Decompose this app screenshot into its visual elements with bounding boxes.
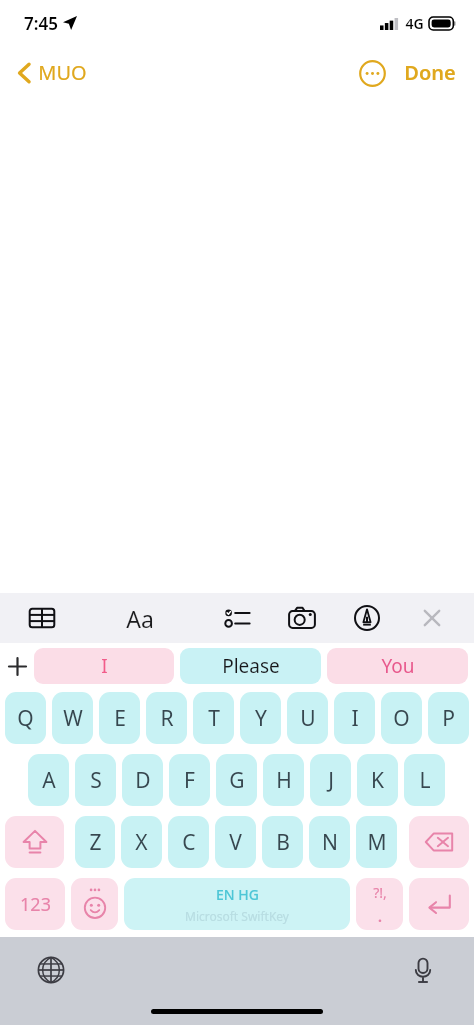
staticText: M	[367, 828, 387, 857]
staticText: W	[63, 704, 83, 733]
button[interactable]: I	[334, 692, 375, 744]
button[interactable]: D	[122, 754, 163, 806]
staticText: Aa	[126, 603, 154, 634]
button[interactable]: Text format	[74, 593, 139, 643]
button[interactable]: Aa	[75, 593, 205, 643]
staticText: A	[42, 766, 56, 795]
button[interactable]: A	[28, 754, 69, 806]
staticText: V	[229, 828, 242, 857]
button[interactable]: J	[310, 754, 351, 806]
staticText: I	[351, 704, 359, 733]
button[interactable]: Punctuation	[356, 878, 403, 930]
staticText: 4G	[405, 14, 424, 33]
button[interactable]: Close keyboard	[399, 593, 464, 643]
staticText: E	[114, 704, 126, 733]
button[interactable]: Backspace	[409, 816, 469, 868]
staticText: You	[381, 653, 415, 679]
button[interactable]: G	[216, 754, 257, 806]
staticText: K	[371, 766, 384, 795]
button[interactable]: R	[146, 692, 187, 744]
button[interactable]: C	[168, 816, 209, 868]
button[interactable]: Q	[5, 692, 46, 744]
button[interactable]: X	[121, 816, 162, 868]
button[interactable]: N	[309, 816, 350, 868]
staticText: C	[182, 828, 196, 857]
staticText: 7:45	[24, 12, 58, 35]
staticText: 123	[20, 892, 51, 917]
staticText: O	[393, 704, 410, 733]
button[interactable]: Shift	[5, 816, 64, 868]
staticText: EN HG	[216, 885, 259, 904]
staticText: .	[378, 907, 382, 926]
button[interactable]: O	[381, 692, 422, 744]
staticText: G	[229, 766, 245, 795]
staticText: F	[184, 766, 195, 795]
button[interactable]: Z	[75, 816, 115, 868]
button[interactable]: Y	[240, 692, 281, 744]
staticText: R	[160, 704, 174, 733]
staticText: Z	[89, 828, 102, 857]
button[interactable]: V	[215, 816, 256, 868]
staticText: Microsoft SwiftKey	[185, 908, 289, 924]
button[interactable]: Table	[10, 593, 74, 643]
button[interactable]: Return	[409, 878, 469, 930]
button[interactable]: You	[327, 648, 468, 684]
button[interactable]: H	[263, 754, 304, 806]
button[interactable]: Please	[180, 648, 321, 684]
button[interactable]: More options	[357, 58, 387, 88]
button[interactable]: S	[75, 754, 116, 806]
staticText: X	[135, 828, 148, 857]
button[interactable]: Camera	[269, 593, 334, 643]
staticText: Y	[255, 704, 267, 733]
button[interactable]: E	[99, 692, 140, 744]
staticText: Q	[17, 704, 34, 733]
button[interactable]: M	[356, 816, 397, 868]
button[interactable]: L	[404, 754, 445, 806]
staticText: J	[328, 766, 334, 795]
button[interactable]: W	[52, 692, 93, 744]
staticText: S	[90, 766, 102, 795]
staticText: L	[419, 766, 431, 795]
button[interactable]: I	[34, 648, 174, 684]
staticText: P	[442, 704, 455, 733]
button[interactable]: K	[357, 754, 398, 806]
staticText: D	[135, 766, 151, 795]
button[interactable]: Checklist	[204, 593, 269, 643]
button[interactable]: F	[169, 754, 210, 806]
button[interactable]: MUO	[10, 55, 95, 90]
staticText: MUO	[38, 59, 87, 86]
staticText: T	[208, 704, 220, 733]
staticText: Done	[404, 59, 456, 86]
button[interactable]: 123	[5, 878, 65, 930]
button[interactable]: U	[287, 692, 328, 744]
staticText: H	[276, 766, 292, 795]
button[interactable]: T	[193, 692, 234, 744]
staticText: B	[276, 828, 290, 857]
button[interactable]: Done	[400, 55, 460, 90]
button[interactable]: Voice input	[400, 947, 446, 993]
staticText: Please	[222, 653, 280, 679]
staticText: ?!,	[373, 883, 387, 902]
button[interactable]: B	[262, 816, 303, 868]
staticText: N	[322, 828, 338, 857]
button[interactable]: EN HG	[124, 878, 350, 930]
button[interactable]: Markup	[334, 593, 399, 643]
button[interactable]: Add	[0, 643, 34, 689]
button[interactable]: P	[428, 692, 469, 744]
button[interactable]: Change keyboard language	[28, 947, 74, 993]
staticText: I	[101, 653, 108, 679]
staticText: U	[300, 704, 316, 733]
button[interactable]: Emoji	[71, 878, 118, 930]
